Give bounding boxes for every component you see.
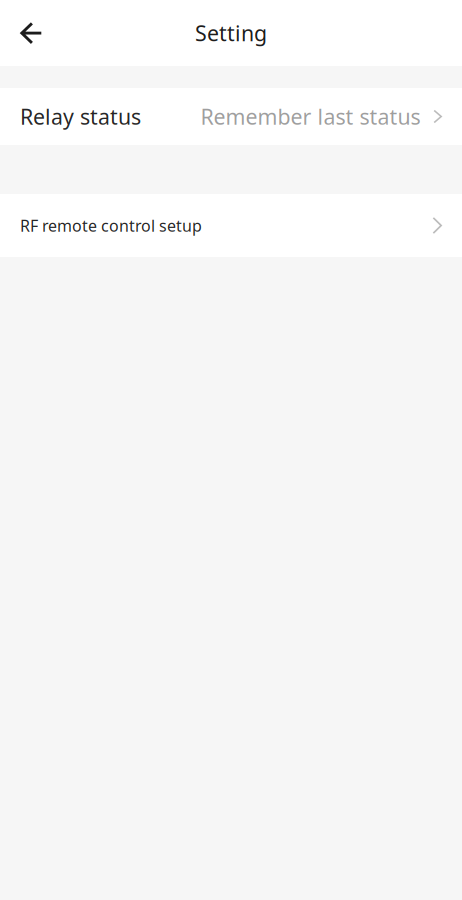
button[interactable]: RF remote control setup <box>0 194 462 257</box>
staticText: Relay status <box>20 102 141 131</box>
button[interactable]: Relay status <box>0 88 462 145</box>
staticText: Setting <box>195 19 267 47</box>
staticText: RF remote control setup <box>20 215 202 236</box>
button[interactable]: Back <box>10 11 52 55</box>
staticText: Remember last status <box>200 102 420 131</box>
